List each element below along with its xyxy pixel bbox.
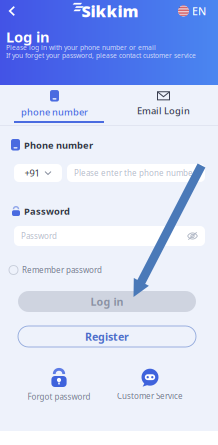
staticText: +91 (24, 167, 39, 179)
button[interactable]: Password (14, 226, 205, 246)
button[interactable]: Language English (178, 2, 206, 20)
button[interactable]: +91 (14, 164, 62, 182)
staticText: Remember password (22, 265, 102, 275)
staticText: Forgot password (27, 391, 90, 402)
button[interactable]: Register (18, 326, 196, 347)
button[interactable]: phone number (0, 88, 109, 120)
staticText: Phone number (24, 139, 93, 151)
staticText: Password (21, 231, 57, 241)
staticText: Log in (90, 294, 123, 309)
button[interactable]: Email Login (109, 88, 218, 120)
staticText: Password (24, 205, 70, 217)
button[interactable]: Remember password (9, 263, 119, 277)
staticText: EN (192, 4, 206, 18)
staticText: phone number (21, 106, 88, 118)
staticText: Email Login (137, 104, 190, 117)
staticText: If you forget your password, please cont… (6, 51, 196, 60)
staticText: Please log in with your phone number or … (6, 43, 156, 52)
button[interactable]: Log in (18, 291, 196, 312)
staticText: Log in (6, 27, 50, 46)
staticText: Sikkim (81, 0, 138, 22)
button[interactable]: Customer Service (100, 364, 200, 404)
staticText: Customer Service (117, 391, 183, 401)
staticText: Register (85, 329, 129, 344)
button[interactable]: Please enter the phone number (67, 164, 205, 182)
staticText: Please enter the phone number (74, 168, 196, 178)
button[interactable]: Back (2, 1, 22, 21)
button[interactable]: Forgot password (9, 364, 109, 404)
